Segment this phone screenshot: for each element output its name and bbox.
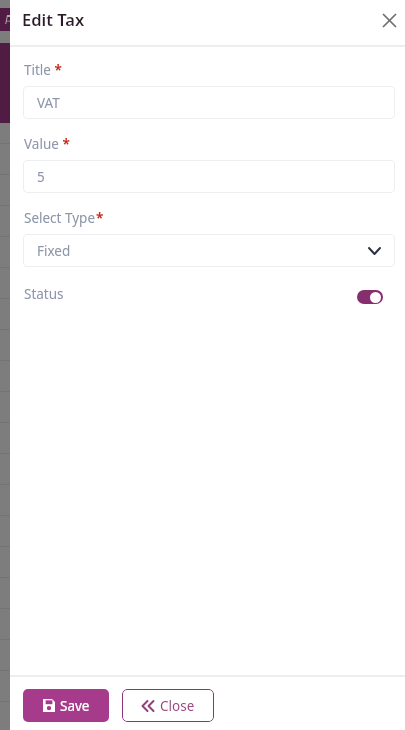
staticText: * xyxy=(96,209,104,227)
button[interactable]: Save xyxy=(23,689,109,722)
button[interactable]: VAT xyxy=(23,86,395,119)
button[interactable]: 5 xyxy=(23,160,395,193)
staticText: VAT xyxy=(37,94,60,112)
staticText: Fixed xyxy=(37,242,71,260)
staticText: Edit Tax xyxy=(22,8,85,30)
button[interactable]: Status enabled xyxy=(357,290,383,304)
staticText: Save xyxy=(60,697,90,715)
button[interactable]: Close xyxy=(122,689,214,722)
button[interactable]: Fixed xyxy=(23,234,395,267)
staticText: * xyxy=(51,61,62,79)
staticText: * xyxy=(59,135,70,153)
staticText: 5 xyxy=(37,168,45,186)
button[interactable]: Close dialog xyxy=(374,5,405,36)
staticText: Title xyxy=(24,61,51,79)
staticText: Status xyxy=(24,285,64,303)
staticText: Select Type xyxy=(24,209,96,227)
other: Expand options xyxy=(369,248,380,254)
staticText: Close xyxy=(160,697,195,715)
staticText: Value xyxy=(24,135,59,153)
